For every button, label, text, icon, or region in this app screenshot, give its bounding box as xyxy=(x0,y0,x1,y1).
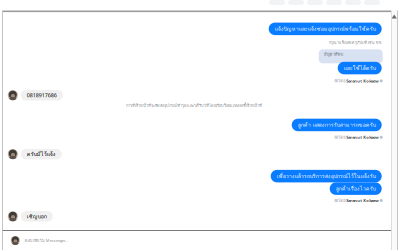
staticText: ปัญหาที่พบ xyxy=(324,51,344,57)
staticText: กรุณาแจ้งเลขครุภัณฑ์ เช่น ขข xyxy=(329,40,382,46)
staticText: ลูกค้าเรื่องไวครับ xyxy=(336,184,376,193)
staticText: Saranut Kokaew xyxy=(346,198,378,203)
staticText: ส่งโดย xyxy=(334,197,346,204)
staticText: ลูกค้า แสดงการรับสามารถขอครับ xyxy=(298,121,376,129)
staticText: Saranut Kokaew xyxy=(346,135,378,140)
staticText: เชิญบอก xyxy=(27,212,47,220)
staticText: ส่งโดย xyxy=(334,78,346,84)
button[interactable]: เชิญบอก xyxy=(21,211,53,222)
staticText: และใช้ได้ครับ xyxy=(344,64,376,72)
button[interactable]: และใช้ได้ครับ xyxy=(338,62,382,74)
staticText: Saranut Kokaew xyxy=(346,78,378,83)
button[interactable]: ลูกค้า แสดงการรับสามารถขอครับ xyxy=(292,119,382,131)
button[interactable]: เพื่อวางแล้วรถบริการส่งอุปกรณ์ไว้ในแจ้งร… xyxy=(271,170,382,182)
button[interactable]: 0818917686 xyxy=(21,90,63,100)
staticText: แจ้งปัญหาและแจ้งซ่อมอุปกรณ์พร้อมใช้ครับ xyxy=(275,25,376,33)
staticText: การที่เจ้าหน้าที่จะจัดส่งอุปกรณ์ชำรุดและ… xyxy=(126,102,262,109)
staticText: ตอบกลับใน Messenger... xyxy=(25,237,68,244)
button[interactable]: ลูกค้าเรื่องไวครับ xyxy=(330,182,382,195)
button[interactable]: แจ้งปัญหาและแจ้งซ่อมอุปกรณ์พร้อมใช้ครับ xyxy=(269,23,382,35)
button[interactable]: ครับมีไว้แจ้ง xyxy=(21,149,62,159)
staticText: ส่งโดย xyxy=(334,134,346,140)
staticText: 0818917686 xyxy=(27,92,57,99)
button[interactable]: ตอบกลับใน Messenger... xyxy=(3,231,391,250)
staticText: ครับมีไว้แจ้ง xyxy=(27,150,56,158)
staticText: เพื่อวางแล้วรถบริการส่งอุปกรณ์ไว้ในแจ้งร… xyxy=(277,172,376,180)
